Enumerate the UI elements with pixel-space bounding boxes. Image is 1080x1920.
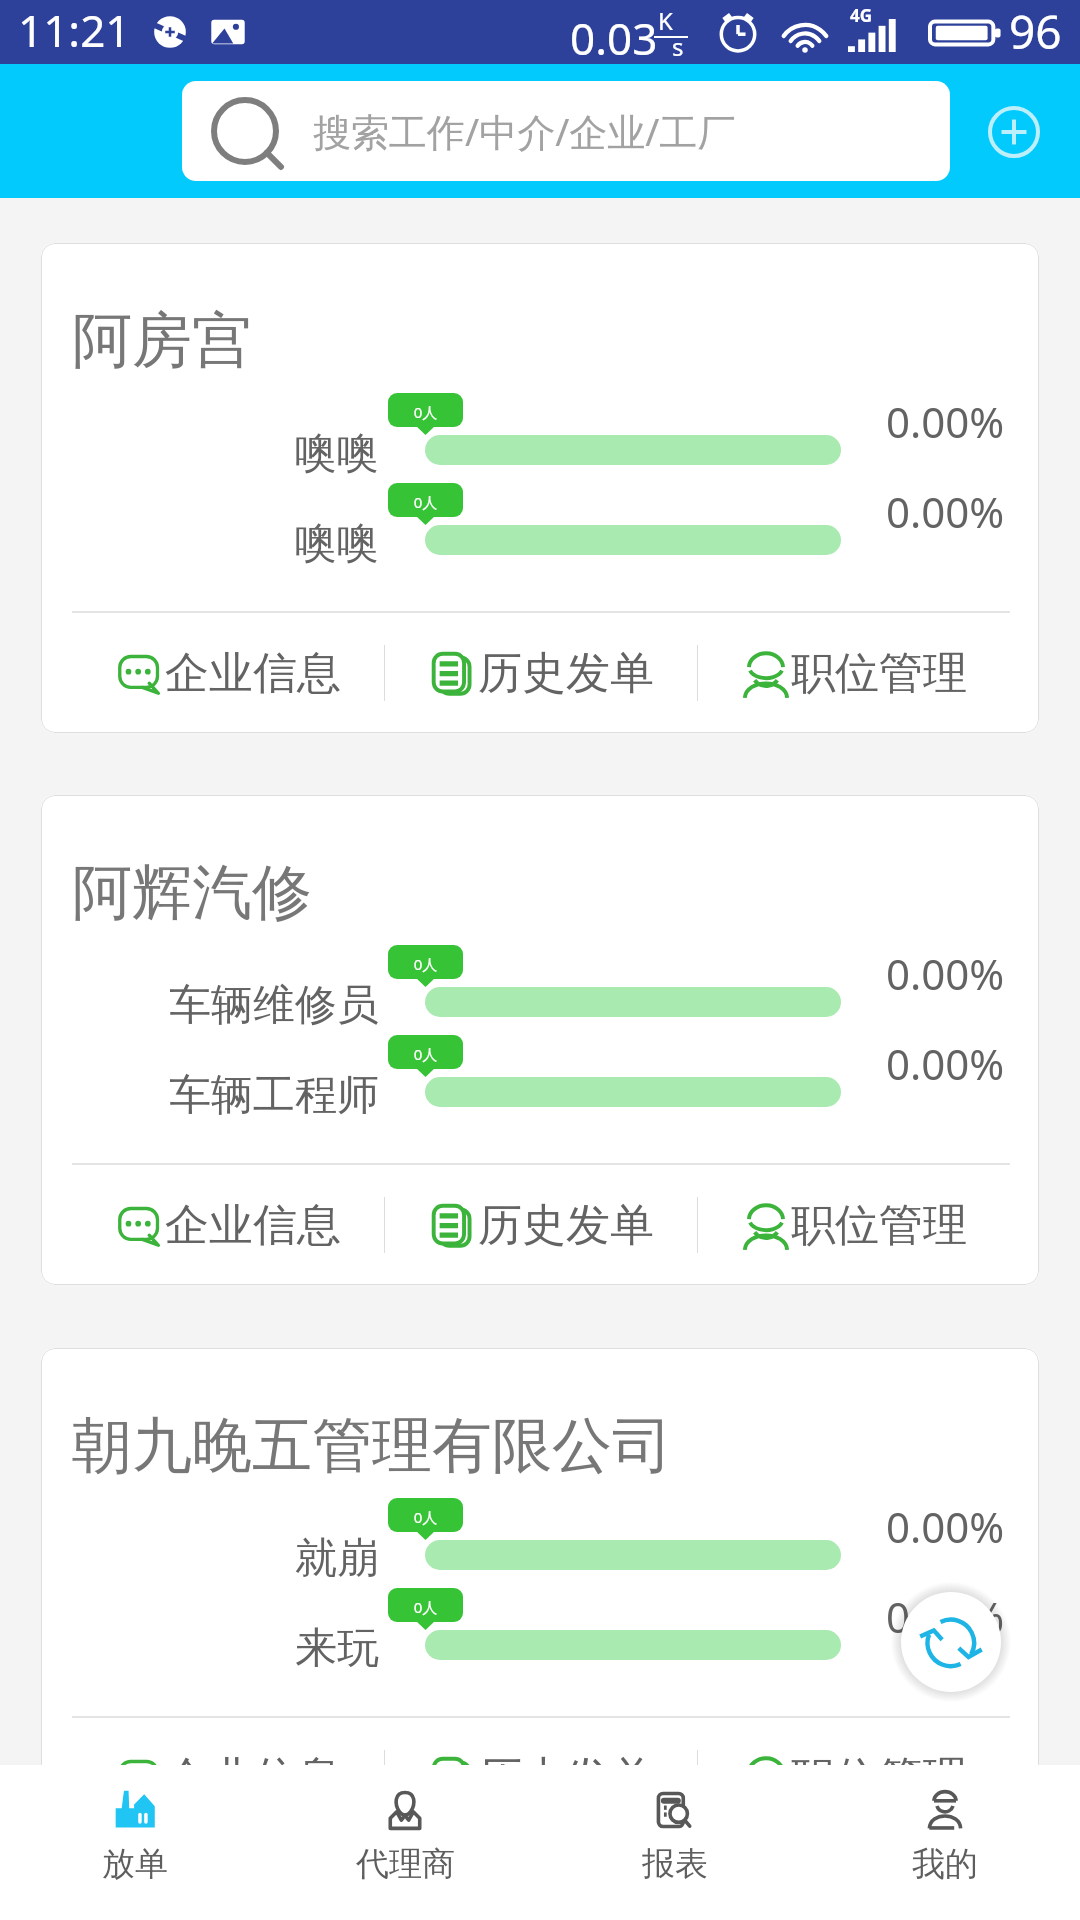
staticText: s xyxy=(672,30,684,63)
button[interactable]: 阿房宫 xyxy=(41,243,1039,733)
button[interactable]: 企业信息 xyxy=(72,1165,384,1285)
staticText: 0.00% xyxy=(886,1035,1005,1092)
staticText: 企业信息 xyxy=(165,1198,341,1253)
button[interactable]: 企业信息 xyxy=(72,613,384,733)
staticText: 0人 xyxy=(388,1044,463,1064)
staticText: 我的 xyxy=(912,1843,978,1885)
staticText: 0人 xyxy=(388,492,463,512)
staticText: 0.00% xyxy=(886,1498,1005,1555)
staticText: K xyxy=(658,4,673,37)
button[interactable]: 放单 xyxy=(0,1765,270,1920)
button[interactable]: Refresh xyxy=(901,1592,1001,1692)
staticText: 历史发单 xyxy=(478,646,654,701)
staticText: 职位管理 xyxy=(791,1198,967,1253)
staticText: 0人 xyxy=(388,402,463,422)
staticText: 朝九晚五管理有限公司 xyxy=(72,1408,672,1484)
staticText: 车辆工程师 xyxy=(61,1069,379,1122)
staticText: 0人 xyxy=(388,1597,463,1617)
button[interactable]: 历史发单 xyxy=(385,1165,697,1285)
button[interactable]: 朝九晚五管理有限公司 xyxy=(41,1348,1039,1765)
staticText: 报表 xyxy=(642,1843,708,1885)
staticText: 来玩 xyxy=(61,1622,379,1675)
staticText: 0.00% xyxy=(886,1588,1005,1645)
staticText: 11:21 xyxy=(18,0,131,60)
staticText: 历史发单 xyxy=(478,1198,654,1253)
staticText: 阿房宫 xyxy=(72,303,252,379)
staticText: 企业信息 xyxy=(165,1751,341,1765)
staticText: 0.00% xyxy=(886,483,1005,540)
button[interactable]: 职位管理 xyxy=(698,1718,1010,1765)
button[interactable]: 企业信息 xyxy=(72,1718,384,1765)
staticText: 代理商 xyxy=(356,1843,455,1885)
button[interactable]: 代理商 xyxy=(270,1765,540,1920)
button[interactable]: 报表 xyxy=(540,1765,810,1920)
button[interactable]: 职位管理 xyxy=(698,1165,1010,1285)
staticText: 历史发单 xyxy=(478,1751,654,1765)
button[interactable]: 阿辉汽修 xyxy=(41,795,1039,1285)
staticText: 0.00% xyxy=(886,393,1005,450)
staticText: 放单 xyxy=(102,1843,168,1885)
staticText: 车辆维修员 xyxy=(61,979,379,1032)
staticText: 0.03 xyxy=(570,8,658,68)
button[interactable]: 我的 xyxy=(810,1765,1080,1920)
button[interactable]: 历史发单 xyxy=(385,613,697,733)
button[interactable]: Search xyxy=(182,81,950,181)
staticText: 噢噢 xyxy=(61,427,379,480)
staticText: 职位管理 xyxy=(791,646,967,701)
staticText: 4G xyxy=(850,4,873,27)
button[interactable]: 历史发单 xyxy=(385,1718,697,1765)
button[interactable]: Add xyxy=(988,106,1040,158)
button[interactable]: 职位管理 xyxy=(698,613,1010,733)
staticText: 96 xyxy=(1009,0,1062,63)
staticText: 0.00% xyxy=(886,945,1005,1002)
staticText: 企业信息 xyxy=(165,646,341,701)
staticText: 0人 xyxy=(388,1507,463,1527)
staticText: 职位管理 xyxy=(791,1751,967,1765)
staticText: 噢噢 xyxy=(61,517,379,570)
staticText: 搜索工作/中介/企业/工厂 xyxy=(313,105,736,157)
staticText: 0人 xyxy=(388,954,463,974)
staticText: 阿辉汽修 xyxy=(72,855,312,931)
staticText: 就崩 xyxy=(61,1532,379,1585)
